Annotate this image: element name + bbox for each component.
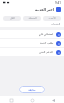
button[interactable]: متابعة [19,86,45,93]
button[interactable]: Profile [56,7,61,12]
staticText: طلب خدمة [40,41,54,45]
staticText: متابعة [28,88,36,91]
staticText: المفضلة [28,17,37,20]
button[interactable]: طلب خدمة [0,39,64,47]
button[interactable]: Back [50,97,56,103]
button[interactable]: الكل [3,16,21,21]
staticText: الخدمات [51,23,61,26]
button[interactable]: استعلام عام [0,30,64,38]
staticText: الدعم الفني [39,50,54,54]
button[interactable]: Home [29,97,35,103]
staticText: اختر الخدمة [35,7,54,12]
button[interactable]: Recents [8,97,14,103]
staticText: 9:41 [55,1,61,5]
button[interactable]: الأحدث [43,16,61,21]
button[interactable]: المفضلة [23,16,41,21]
staticText: الكل [10,17,15,20]
staticText: الأحدث [48,17,56,20]
button[interactable]: الدعم الفني [0,48,64,56]
staticText: استعلام عام [39,32,54,36]
